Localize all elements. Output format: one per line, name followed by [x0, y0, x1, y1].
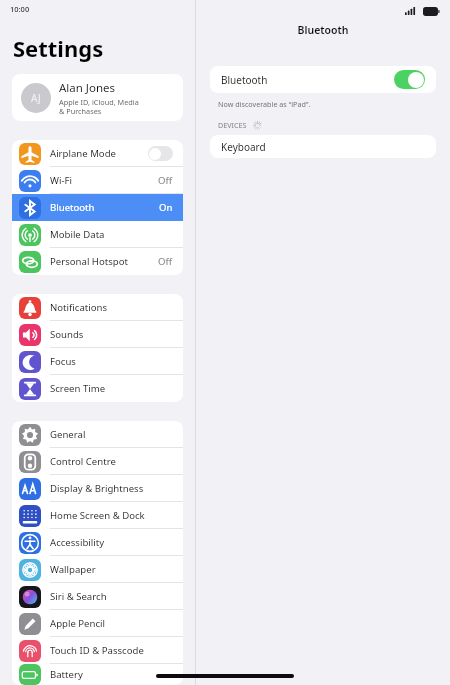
staticText: Apple Pencil [50, 617, 173, 630]
button[interactable]: AJ [12, 74, 183, 121]
staticText: Bluetooth [221, 73, 394, 87]
button[interactable]: Sounds [12, 321, 183, 348]
staticText: Off [158, 255, 173, 268]
button[interactable]: Control Centre [12, 448, 183, 475]
button[interactable]: Display & Brightness [12, 475, 183, 502]
button[interactable]: Wallpaper [12, 556, 183, 583]
button[interactable]: Notifications [12, 294, 183, 321]
staticText: Home Screen & Dock [50, 509, 173, 522]
button[interactable]: Personal Hotspot [12, 248, 183, 275]
staticText: Focus [50, 355, 173, 368]
staticText: Touch ID & Passcode [50, 644, 173, 657]
button[interactable]: Switch on [394, 70, 425, 89]
staticText: Control Centre [50, 455, 173, 468]
button[interactable]: Switch off [148, 146, 173, 161]
staticText: Settings [13, 33, 104, 63]
button[interactable]: Bluetooth [12, 194, 183, 221]
button[interactable]: General [12, 421, 183, 448]
button[interactable]: Keyboard [210, 135, 436, 158]
staticText: Accessibility [50, 536, 173, 549]
staticText: Personal Hotspot [50, 255, 158, 268]
staticText: Airplane Mode [50, 147, 148, 160]
staticText: Apple ID, iCloud, Media & Purchases [59, 97, 139, 116]
staticText: Off [158, 174, 173, 187]
staticText: Screen Time [50, 382, 173, 395]
staticText: 10:00 [10, 4, 30, 14]
staticText: Siri & Search [50, 590, 173, 603]
staticText: Wi-Fi [50, 174, 158, 187]
staticText: Notifications [50, 301, 173, 314]
button[interactable]: Home Screen & Dock [12, 502, 183, 529]
button[interactable]: Apple Pencil [12, 610, 183, 637]
button[interactable]: Wi-Fi [12, 167, 183, 194]
button[interactable]: Focus [12, 348, 183, 375]
staticText: On [159, 201, 173, 214]
staticText: Alan Jones [59, 80, 116, 96]
staticText: Bluetooth [50, 201, 159, 214]
button[interactable]: Mobile Data [12, 221, 183, 248]
staticText: Sounds [50, 328, 173, 341]
staticText: Battery [50, 668, 173, 681]
button[interactable]: Screen Time [12, 375, 183, 402]
button[interactable]: Accessibility [12, 529, 183, 556]
staticText: AJ [31, 91, 41, 105]
button[interactable]: Touch ID & Passcode [12, 637, 183, 664]
staticText: DEVICES [218, 120, 247, 130]
staticText: Now discoverable as “iPad”. [218, 99, 311, 109]
button[interactable]: Airplane Mode [12, 140, 183, 167]
staticText: Bluetooth [196, 23, 450, 37]
button[interactable]: Siri & Search [12, 583, 183, 610]
staticText: Display & Brightness [50, 482, 173, 495]
staticText: General [50, 428, 173, 441]
staticText: Mobile Data [50, 228, 173, 241]
button[interactable]: Bluetooth [210, 66, 436, 93]
staticText: Keyboard [221, 140, 266, 154]
staticText: Wallpaper [50, 563, 173, 576]
button[interactable]: Battery [12, 664, 183, 685]
